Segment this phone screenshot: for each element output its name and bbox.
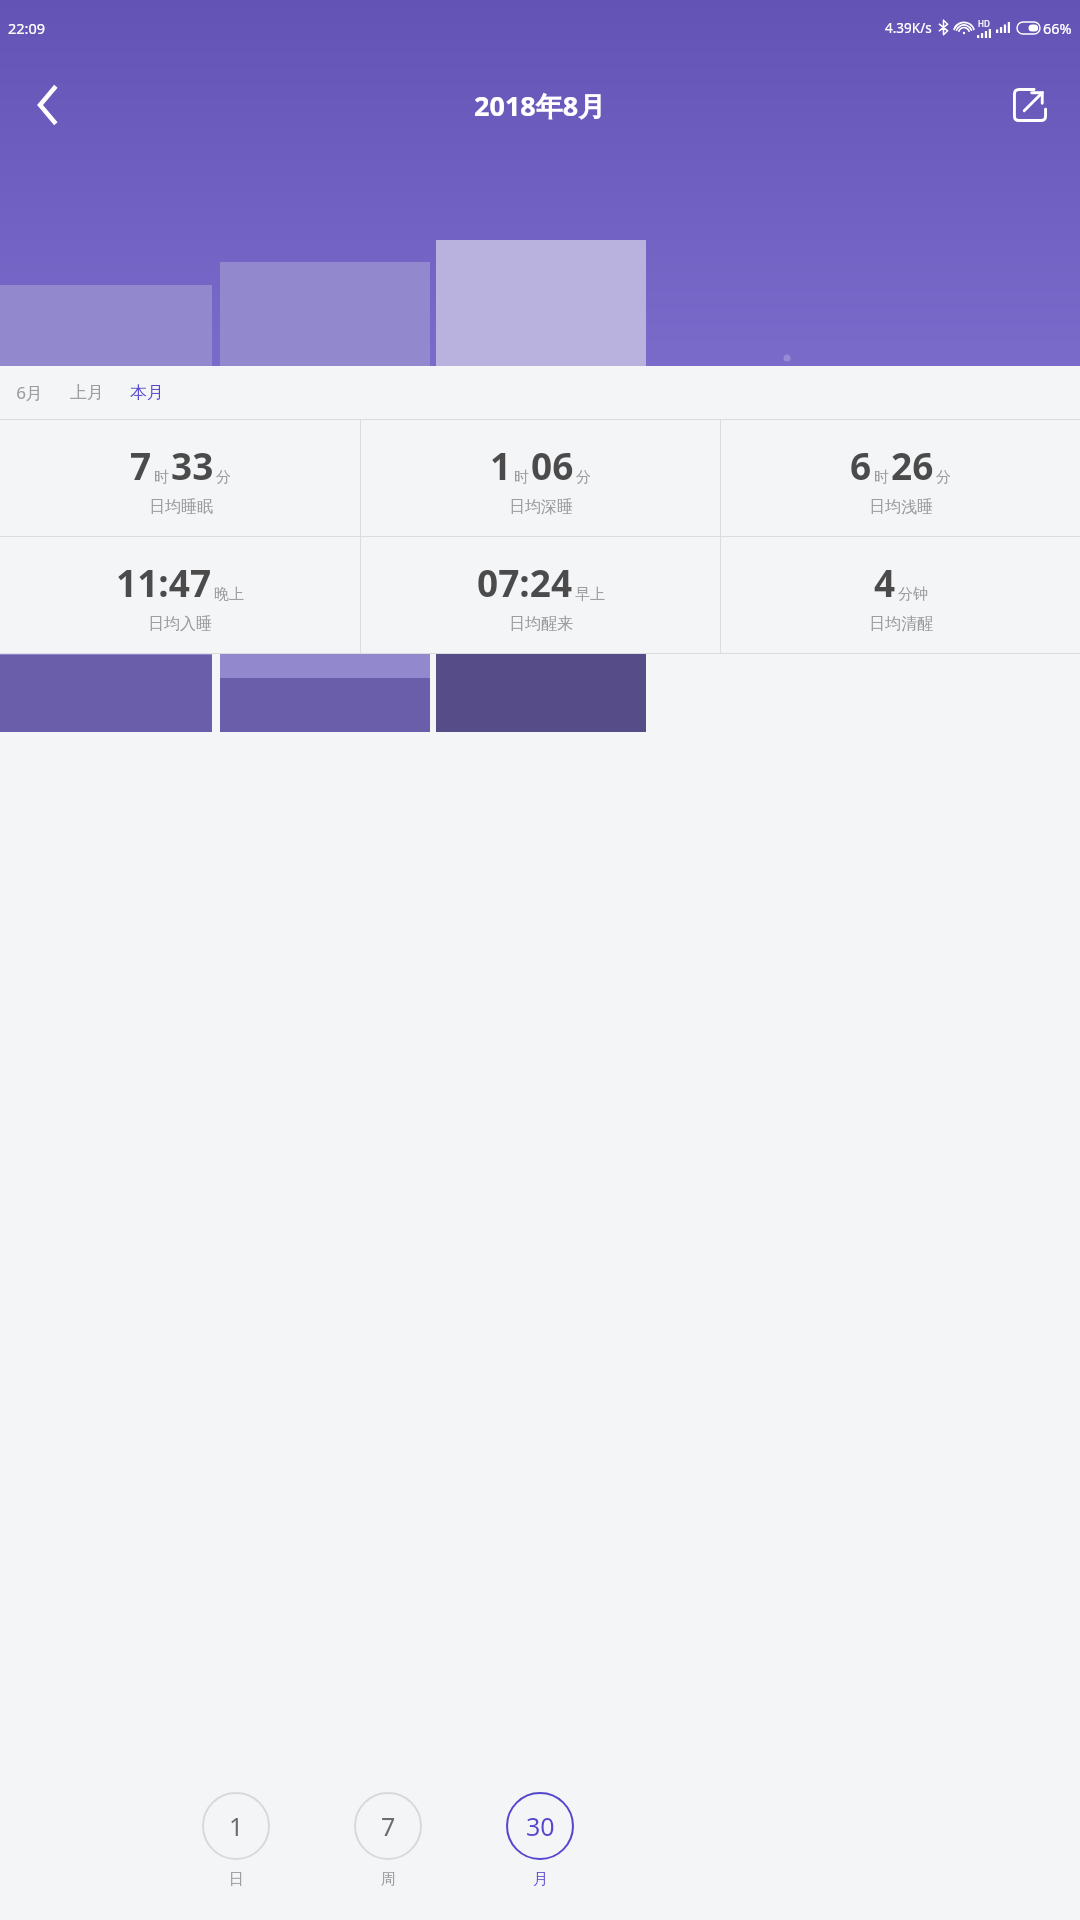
staticText: 日均深睡 — [509, 497, 573, 517]
staticText: 6月 — [16, 381, 43, 404]
button[interactable]: 1 — [160, 1792, 312, 1889]
button[interactable]: 11:47 — [0, 537, 360, 653]
button[interactable]: 30 — [464, 1792, 616, 1889]
staticText: 6 — [850, 440, 872, 490]
staticText: 07:24 — [477, 557, 573, 607]
staticText: 周 — [381, 1870, 396, 1889]
staticText: 06 — [531, 440, 574, 490]
staticText: HD — [978, 18, 990, 29]
staticText: 分 — [936, 468, 951, 487]
staticText: 30 — [526, 1809, 555, 1843]
staticText: 日 — [229, 1870, 244, 1889]
button[interactable]: 上月 — [67, 366, 107, 419]
button[interactable]: Share — [1002, 77, 1058, 133]
staticText: 4 — [874, 557, 896, 607]
button[interactable]: 本月 — [127, 366, 167, 419]
staticText: 晚上 — [214, 585, 244, 604]
staticText: 本月 — [130, 382, 164, 403]
staticText: 时 — [514, 468, 529, 487]
button[interactable]: Back — [20, 77, 76, 133]
staticText: 分 — [576, 468, 591, 487]
button[interactable]: 7 — [312, 1792, 464, 1889]
button[interactable]: 1 — [361, 420, 720, 536]
staticText: 日均入睡 — [148, 614, 212, 634]
button[interactable]: 4 — [721, 537, 1080, 653]
button[interactable]: 7 — [0, 420, 360, 536]
staticText: 日均醒来 — [509, 614, 573, 634]
staticText: 7 — [381, 1809, 396, 1843]
staticText: 22:09 — [8, 18, 46, 38]
staticText: 早上 — [575, 585, 605, 604]
staticText: 月 — [533, 1870, 548, 1889]
staticText: 66% — [1043, 18, 1072, 38]
staticText: 时 — [874, 468, 889, 487]
staticText: 2018年8月 — [474, 87, 606, 124]
staticText: 1 — [229, 1809, 244, 1843]
staticText: 7 — [130, 440, 152, 490]
staticText: 日均浅睡 — [869, 497, 933, 517]
staticText: 分 — [216, 468, 231, 487]
staticText: 时 — [154, 468, 169, 487]
button[interactable]: 6 — [721, 420, 1080, 536]
staticText: 1 — [490, 440, 512, 490]
staticText: 分钟 — [898, 585, 928, 604]
staticText: 日均清醒 — [869, 614, 933, 634]
staticText: 33 — [171, 440, 214, 490]
staticText: 4.39K/s — [885, 19, 932, 37]
button[interactable]: 6月 — [9, 366, 49, 419]
staticText: 日均睡眠 — [149, 497, 213, 517]
button[interactable]: 07:24 — [361, 537, 720, 653]
staticText: 26 — [891, 440, 934, 490]
staticText: 上月 — [70, 382, 104, 403]
staticText: 11:47 — [116, 557, 212, 607]
